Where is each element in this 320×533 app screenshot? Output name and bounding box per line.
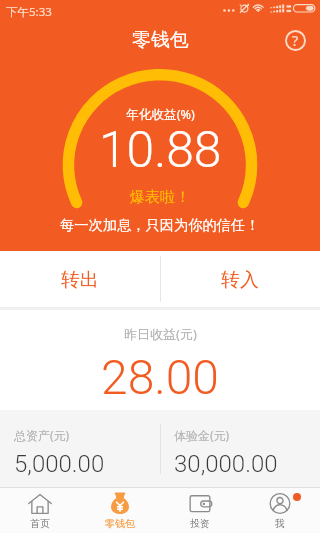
staticText: 爆表啦！ bbox=[130, 187, 191, 206]
button[interactable]: 零钱包 bbox=[80, 487, 160, 533]
staticText: 体验金(元) bbox=[174, 427, 230, 443]
button[interactable]: 首页 bbox=[0, 487, 80, 533]
staticText: 每一次加息，只因为你的信任！ bbox=[60, 216, 260, 234]
staticText: 昨日收益(元) bbox=[124, 325, 197, 343]
staticText: 我 bbox=[275, 517, 285, 530]
staticText: 首页 bbox=[30, 517, 50, 530]
staticText: 30,000.00 bbox=[174, 450, 278, 478]
button[interactable]: 转出 bbox=[0, 251, 160, 307]
button[interactable]: 投资 bbox=[160, 487, 240, 533]
staticText: 总资产(元) bbox=[14, 427, 70, 443]
staticText: 转入 bbox=[221, 268, 259, 292]
button[interactable]: 转入 bbox=[160, 251, 320, 307]
staticText: 投资 bbox=[190, 517, 210, 530]
button[interactable]: Help bbox=[285, 30, 306, 51]
staticText: 下午5:33 bbox=[6, 4, 52, 20]
staticText: 10.88 bbox=[99, 121, 222, 179]
staticText: 转出 bbox=[61, 268, 99, 292]
staticText: 零钱包 bbox=[132, 28, 189, 52]
staticText: 5,000.00 bbox=[14, 450, 105, 478]
staticText: 28.00 bbox=[101, 349, 219, 405]
staticText: 年化收益(%) bbox=[126, 105, 195, 122]
staticText: 零钱包 bbox=[105, 517, 135, 530]
button[interactable]: 我 bbox=[240, 487, 320, 533]
staticText: ? bbox=[292, 31, 299, 50]
